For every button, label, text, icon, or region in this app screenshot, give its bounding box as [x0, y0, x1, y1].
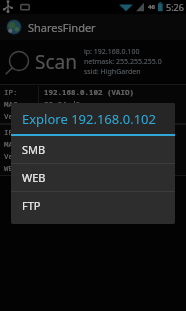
staticText: IP:	[4, 87, 18, 97]
staticText: WEB:	[4, 163, 22, 173]
button[interactable]: SMB	[11, 136, 175, 164]
button[interactable]: FTP	[11, 192, 175, 219]
staticText: ip: 192.168.0.100	[84, 47, 140, 57]
staticText: D-Link Corporation	[44, 151, 125, 161]
staticText: Scan	[35, 49, 77, 75]
staticText: Mathopd/1.5p6	[44, 163, 103, 173]
button[interactable]: Scan	[0, 40, 84, 84]
other: Scan	[6, 49, 32, 75]
staticText: Vendor:	[4, 111, 36, 121]
staticText: 5:26	[166, 1, 184, 13]
button[interactable]: IP:	[0, 124, 186, 176]
other: App icon	[6, 19, 22, 35]
staticText: MAC:	[4, 139, 22, 149]
staticText: 192.168.0.102 (VAIO)	[44, 87, 134, 97]
staticText: 192.168.0.1 (dir-300)	[44, 127, 139, 137]
staticText: 46	[148, 3, 155, 11]
staticText: 00:24:d6:	[44, 99, 85, 109]
staticText: SharesFinder	[28, 20, 96, 35]
staticText: SMB	[22, 142, 46, 157]
staticText: ssid: HighGarden	[84, 67, 141, 77]
staticText: f0:7d:68:	[44, 139, 85, 149]
staticText: MAC:	[4, 99, 22, 109]
staticText: Sony	[44, 111, 62, 121]
staticText: Vendor:	[4, 151, 36, 161]
staticText: FTP	[22, 198, 41, 213]
staticText: netmask: 255.255.255.0	[84, 57, 162, 67]
button[interactable]: WEB	[11, 164, 175, 192]
staticText: WEB	[22, 170, 46, 185]
staticText: Explore 192.168.0.102	[22, 110, 156, 128]
button[interactable]: IP:	[0, 84, 186, 124]
staticText: IP:	[4, 127, 18, 137]
